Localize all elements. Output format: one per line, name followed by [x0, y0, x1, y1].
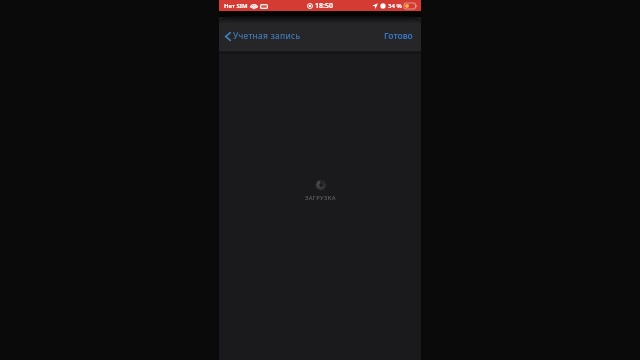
- staticText: Готово: [384, 30, 413, 42]
- other: Wi-Fi: [250, 3, 258, 9]
- other: Loading: [316, 180, 326, 190]
- button[interactable]: Готово: [382, 27, 415, 45]
- staticText: 34 %: [388, 2, 402, 10]
- other: Mobile data: [260, 4, 268, 9]
- other: Screen recording: [307, 3, 313, 9]
- staticText: Учетная запись: [233, 30, 301, 42]
- button[interactable]: Учетная запись: [223, 27, 303, 45]
- other: Location services: [372, 3, 378, 9]
- other: Battery 34 percent, low power mode: [404, 3, 417, 9]
- staticText: 18:50: [315, 1, 333, 11]
- other: Alarm set: [380, 3, 386, 9]
- staticText: Нет SIM: [224, 2, 248, 10]
- staticText: ЗАГРУЗКА: [305, 194, 336, 202]
